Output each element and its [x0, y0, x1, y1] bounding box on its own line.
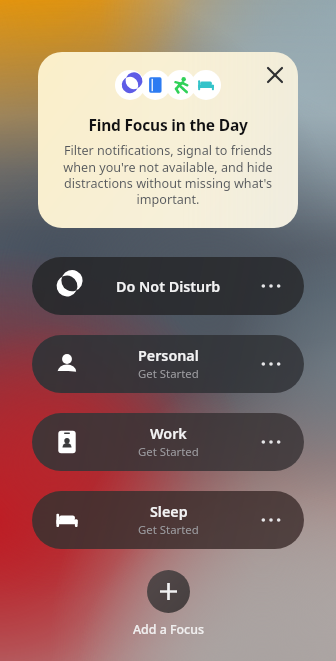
staticText: Sleep	[150, 502, 188, 521]
button[interactable]: Add a Focus	[147, 570, 190, 613]
button[interactable]: Personal	[32, 335, 304, 393]
button[interactable]: Do Not Disturb	[32, 257, 304, 315]
button[interactable]: Close	[261, 61, 289, 89]
staticText: Personal	[138, 346, 199, 365]
button[interactable]: More options for Personal	[254, 347, 288, 381]
button[interactable]: More options for Sleep	[254, 503, 288, 537]
button[interactable]: Add a Focus	[133, 621, 204, 638]
button[interactable]: Work	[32, 413, 304, 471]
staticText: Do Not Disturb	[116, 277, 221, 296]
staticText: Filter notifications, signal to friends …	[58, 142, 278, 208]
button[interactable]: More options for Work	[254, 425, 288, 459]
button[interactable]: Sleep	[32, 491, 304, 549]
staticText: Get Started	[138, 366, 199, 382]
staticText: Work	[150, 424, 187, 443]
staticText: Get Started	[138, 522, 199, 538]
button[interactable]: More options for Do Not Disturb	[254, 269, 288, 303]
staticText: Find Focus in the Day	[88, 114, 248, 135]
staticText: Get Started	[138, 444, 199, 460]
